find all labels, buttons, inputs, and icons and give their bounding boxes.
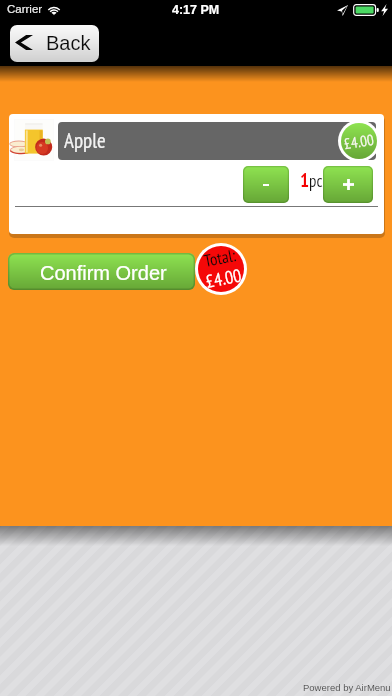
staticText: 1	[300, 168, 310, 193]
staticText: 4:17 PM	[172, 3, 220, 17]
button[interactable]: Increase quantity	[323, 166, 373, 203]
staticText: £4.00	[343, 130, 375, 153]
staticText: £4.00	[204, 263, 243, 292]
button[interactable]: Apple	[58, 122, 376, 160]
staticText: pcs	[309, 170, 329, 192]
staticText: Apple	[64, 127, 106, 154]
button[interactable]: Back	[10, 25, 99, 62]
staticText: Carrier	[7, 3, 43, 16]
staticText: Total:	[202, 246, 239, 272]
staticText: Powered by AirMenu	[303, 682, 391, 693]
button[interactable]: Confirm Order	[8, 253, 195, 290]
button[interactable]: Decrease quantity	[243, 166, 289, 203]
staticText: Confirm Order	[40, 262, 167, 284]
staticText: Back	[46, 32, 91, 54]
